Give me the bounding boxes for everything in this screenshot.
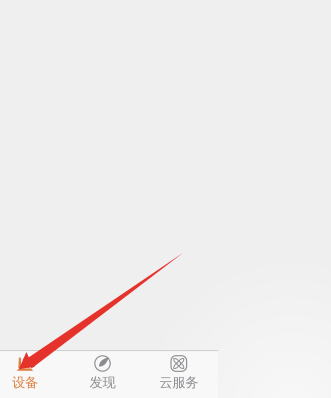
button[interactable]: 发现	[64, 351, 140, 398]
button[interactable]: 云服务	[141, 351, 217, 398]
button[interactable]: 设备	[0, 351, 63, 398]
staticText: 发现	[89, 374, 115, 391]
staticText: 云服务	[159, 374, 198, 391]
staticText: 设备	[12, 374, 38, 391]
